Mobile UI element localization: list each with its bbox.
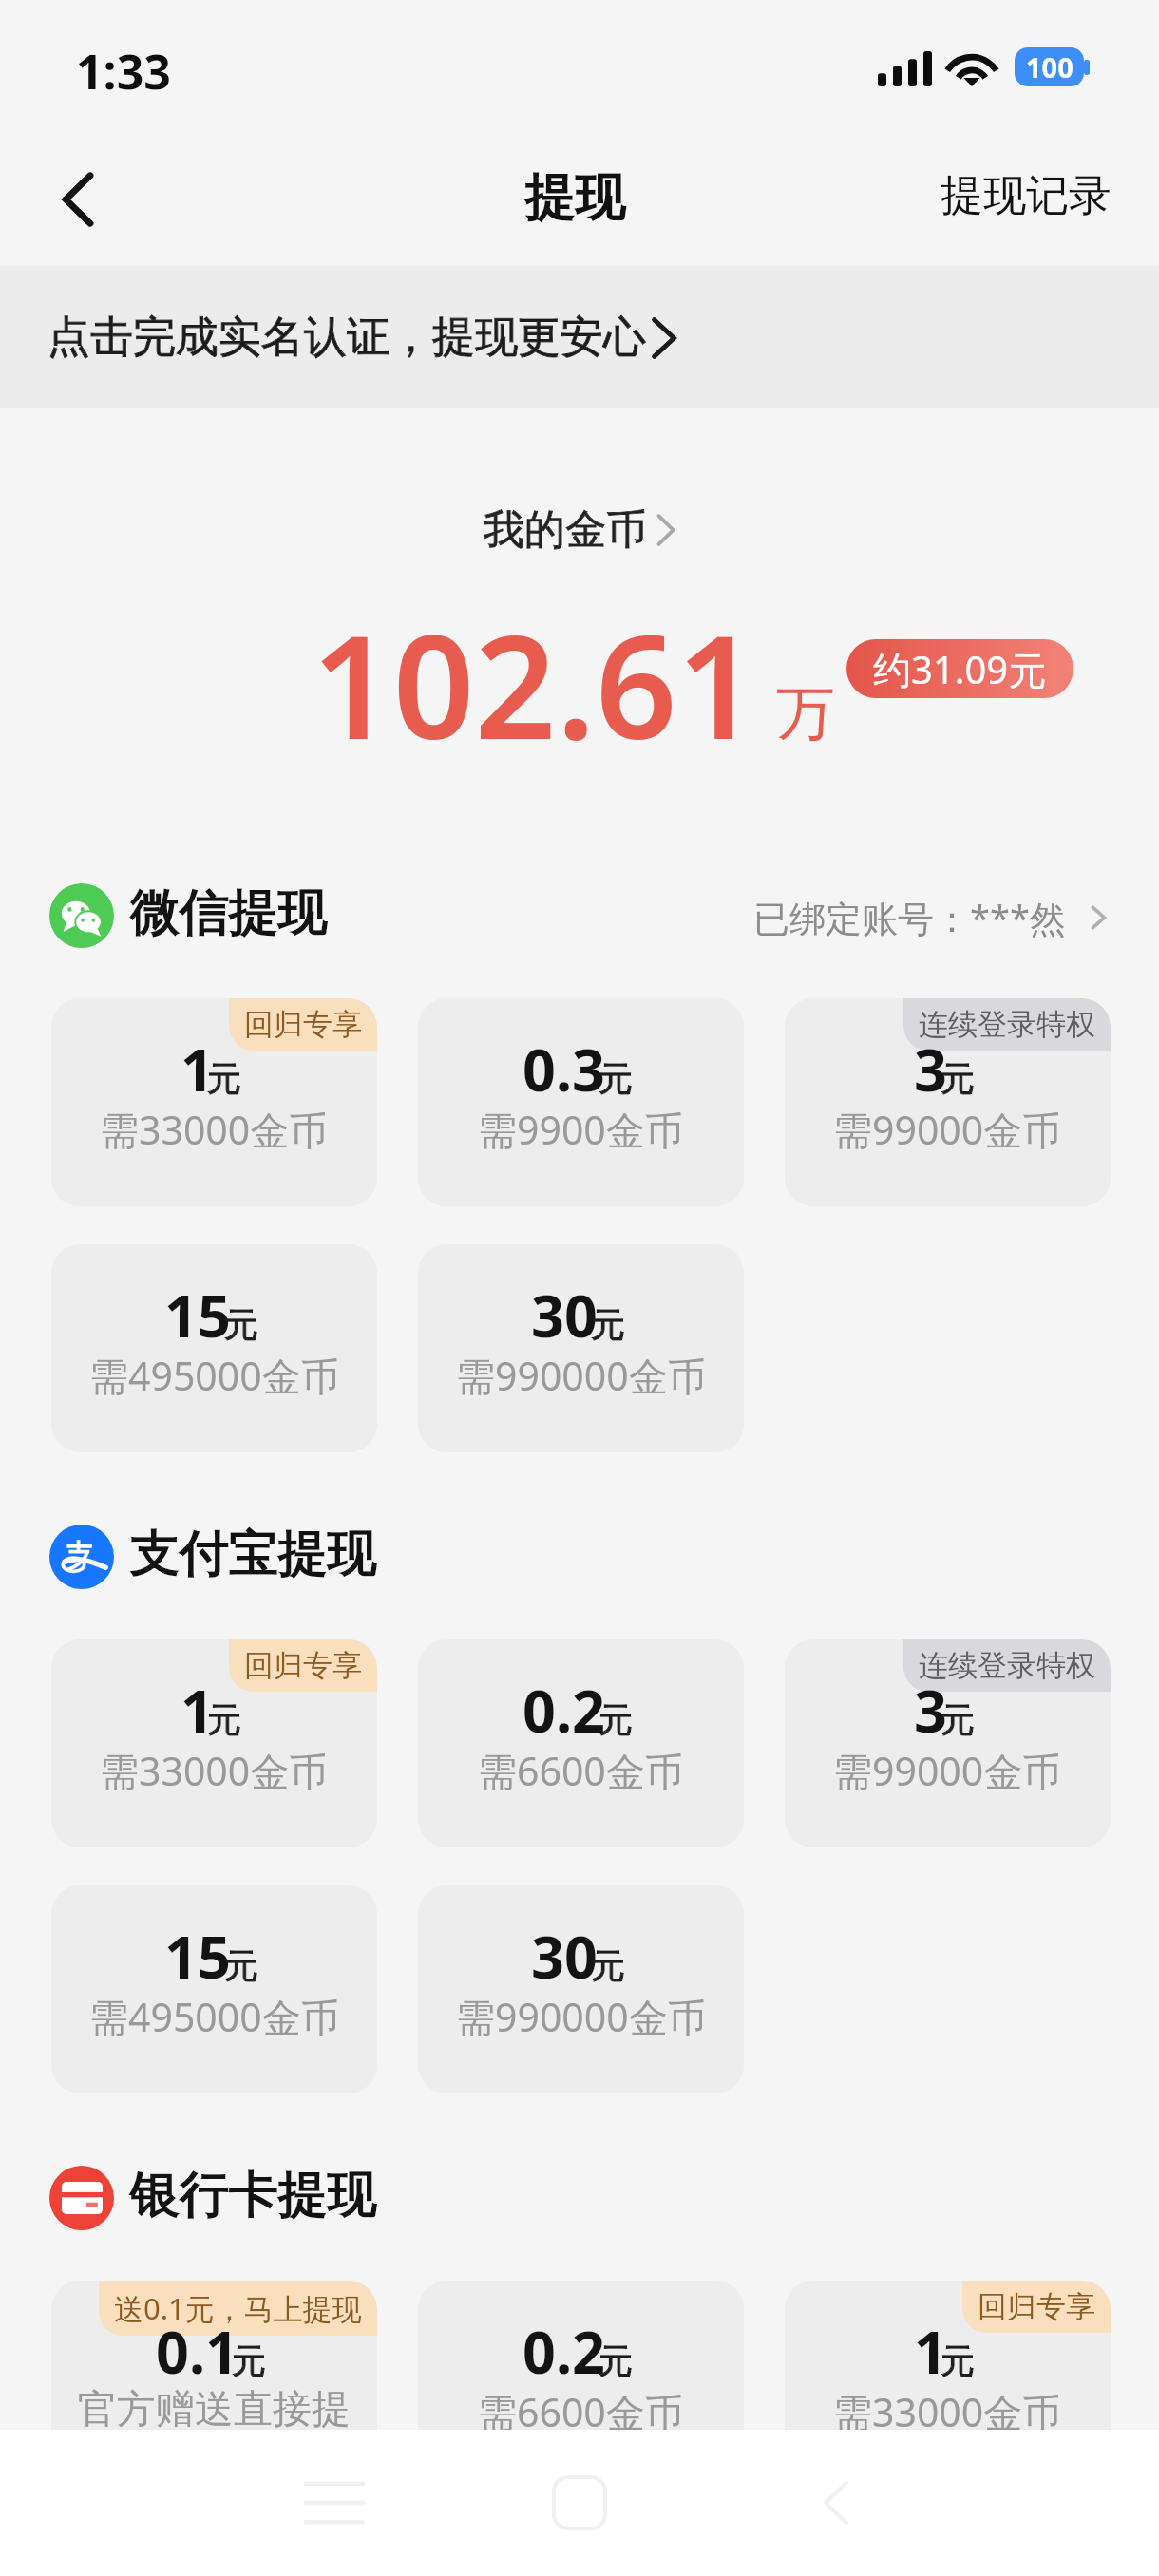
staticText: 0.2 — [522, 1671, 605, 1750]
staticText: 我的金币 — [484, 504, 647, 556]
staticText: 需990000金币 — [456, 1349, 707, 1402]
staticText: 1 — [180, 1030, 214, 1108]
staticText: 元 — [940, 2339, 975, 2382]
button[interactable]: 已绑定账号：***然 — [753, 893, 1115, 942]
staticText: 元 — [232, 2339, 266, 2382]
staticText: 30 — [531, 1917, 598, 1996]
staticText: 送0.1元，马上提现 — [114, 2288, 362, 2328]
staticText: 需6600金币 — [478, 2385, 684, 2438]
button[interactable]: Recent apps — [296, 2465, 372, 2541]
staticText: 102.61 — [312, 587, 759, 781]
staticText: 点击完成实名认证，提现更安心 — [47, 311, 646, 365]
staticText: 需495000金币 — [89, 1349, 340, 1402]
staticText: 15 — [164, 1917, 231, 1996]
staticText: 100 — [1026, 48, 1073, 85]
staticText: 元 — [207, 1057, 241, 1100]
staticText: 元 — [940, 2339, 975, 2382]
staticText: 3 — [914, 1030, 947, 1108]
staticText: 元 — [591, 1303, 625, 1346]
staticText: 提现 — [525, 165, 626, 229]
staticText: 0.3 — [522, 1030, 605, 1108]
button[interactable]: 回归专享 — [51, 998, 377, 1206]
staticText: 元 — [232, 2339, 266, 2382]
staticText: 元 — [598, 2339, 633, 2382]
staticText: 元 — [224, 1303, 258, 1346]
staticText: 需990000金币 — [456, 1990, 707, 2043]
staticText: 元 — [598, 2339, 633, 2382]
staticText: 需33000金币 — [100, 1103, 329, 1156]
button[interactable]: 提现记录 — [940, 169, 1111, 223]
staticText: 元 — [591, 1944, 625, 1987]
staticText: 需33000金币 — [833, 2385, 1062, 2438]
button[interactable]: 15 — [51, 1244, 377, 1452]
staticText: 银行卡提现 — [130, 2164, 377, 2226]
staticText: 元 — [940, 1057, 975, 1100]
button[interactable]: 0.3 — [418, 998, 744, 1206]
button[interactable]: Back — [36, 157, 122, 242]
staticText: 需495000金币 — [89, 1990, 340, 2043]
staticText: 需99000金币 — [833, 1744, 1062, 1797]
button[interactable]: 0.2 — [418, 2281, 744, 2489]
staticText: 元 — [591, 1944, 625, 1987]
staticText: 元 — [940, 1057, 975, 1100]
button[interactable]: 连续登录特权 — [785, 998, 1111, 1206]
staticText: 支付宝提现 — [130, 1523, 377, 1585]
staticText: 元 — [598, 1057, 633, 1100]
staticText: 支付宝提现 — [130, 1523, 377, 1585]
button[interactable]: 点击完成实名认证，提现更安心 — [0, 266, 1159, 408]
staticText: 连续登录特权 — [919, 1006, 1095, 1043]
staticText: 0.2 — [522, 2312, 605, 2391]
staticText: 我的金币 — [484, 504, 647, 556]
staticText: 需99000金币 — [833, 1103, 1062, 1156]
staticText: 微信提现 — [130, 881, 328, 944]
button[interactable]: 30 — [418, 1244, 744, 1452]
button[interactable]: 提现 — [525, 165, 626, 229]
staticText: 元 — [224, 1944, 258, 1987]
staticText: 回归专享 — [244, 1006, 362, 1043]
staticText: 元 — [598, 1698, 633, 1741]
staticText: 元 — [598, 1057, 633, 1100]
staticText: 元 — [207, 1057, 241, 1100]
staticText: 1 — [180, 1671, 214, 1750]
staticText: 回归专享 — [978, 2288, 1095, 2325]
staticText: 元 — [224, 1944, 258, 1987]
staticText: 15 — [164, 1276, 231, 1354]
button[interactable]: 0.2 — [418, 1639, 744, 1847]
button[interactable]: 30 — [418, 1885, 744, 2093]
staticText: 微信提现 — [130, 881, 328, 944]
staticText: 元 — [598, 1698, 633, 1741]
button[interactable]: 连续登录特权 — [785, 1639, 1111, 1847]
button[interactable]: 回归专享 — [51, 1639, 377, 1847]
staticText: 元 — [591, 1303, 625, 1346]
button[interactable]: 我的金币 — [0, 504, 1159, 556]
staticText: 点击完成实名认证，提现更安心 — [47, 311, 646, 365]
staticText: 元 — [207, 1698, 241, 1741]
button[interactable]: 15 — [51, 1885, 377, 2093]
staticText: 3 — [914, 1671, 947, 1750]
staticText: 连续登录特权 — [919, 1647, 1095, 1684]
staticText: 回归专享 — [244, 1647, 362, 1684]
staticText: 1:33 — [76, 39, 171, 104]
staticText: 需6600金币 — [478, 1744, 684, 1797]
staticText: 银行卡提现 — [130, 2164, 377, 2226]
staticText: 官方赠送直接提 — [78, 2385, 351, 2434]
staticText: 需33000金币 — [100, 1744, 329, 1797]
staticText: 元 — [207, 1698, 241, 1741]
staticText: 元 — [940, 1698, 975, 1741]
staticText: 已绑定账号：***然 — [753, 893, 1066, 942]
staticText: 30 — [531, 1276, 598, 1354]
staticText: 0.1 — [156, 2312, 238, 2391]
staticText: 万 — [776, 676, 835, 750]
staticText: 元 — [224, 1303, 258, 1346]
staticText: 元 — [940, 1698, 975, 1741]
button[interactable]: Home — [541, 2465, 617, 2541]
button[interactable]: 回归专享 — [785, 2281, 1111, 2489]
staticText: 提现 — [525, 165, 626, 229]
button[interactable]: 送0.1元，马上提现 — [51, 2281, 377, 2489]
staticText: 需9900金币 — [478, 1103, 684, 1156]
staticText: 约31.09元 — [873, 643, 1047, 695]
staticText: 1 — [914, 2312, 947, 2391]
